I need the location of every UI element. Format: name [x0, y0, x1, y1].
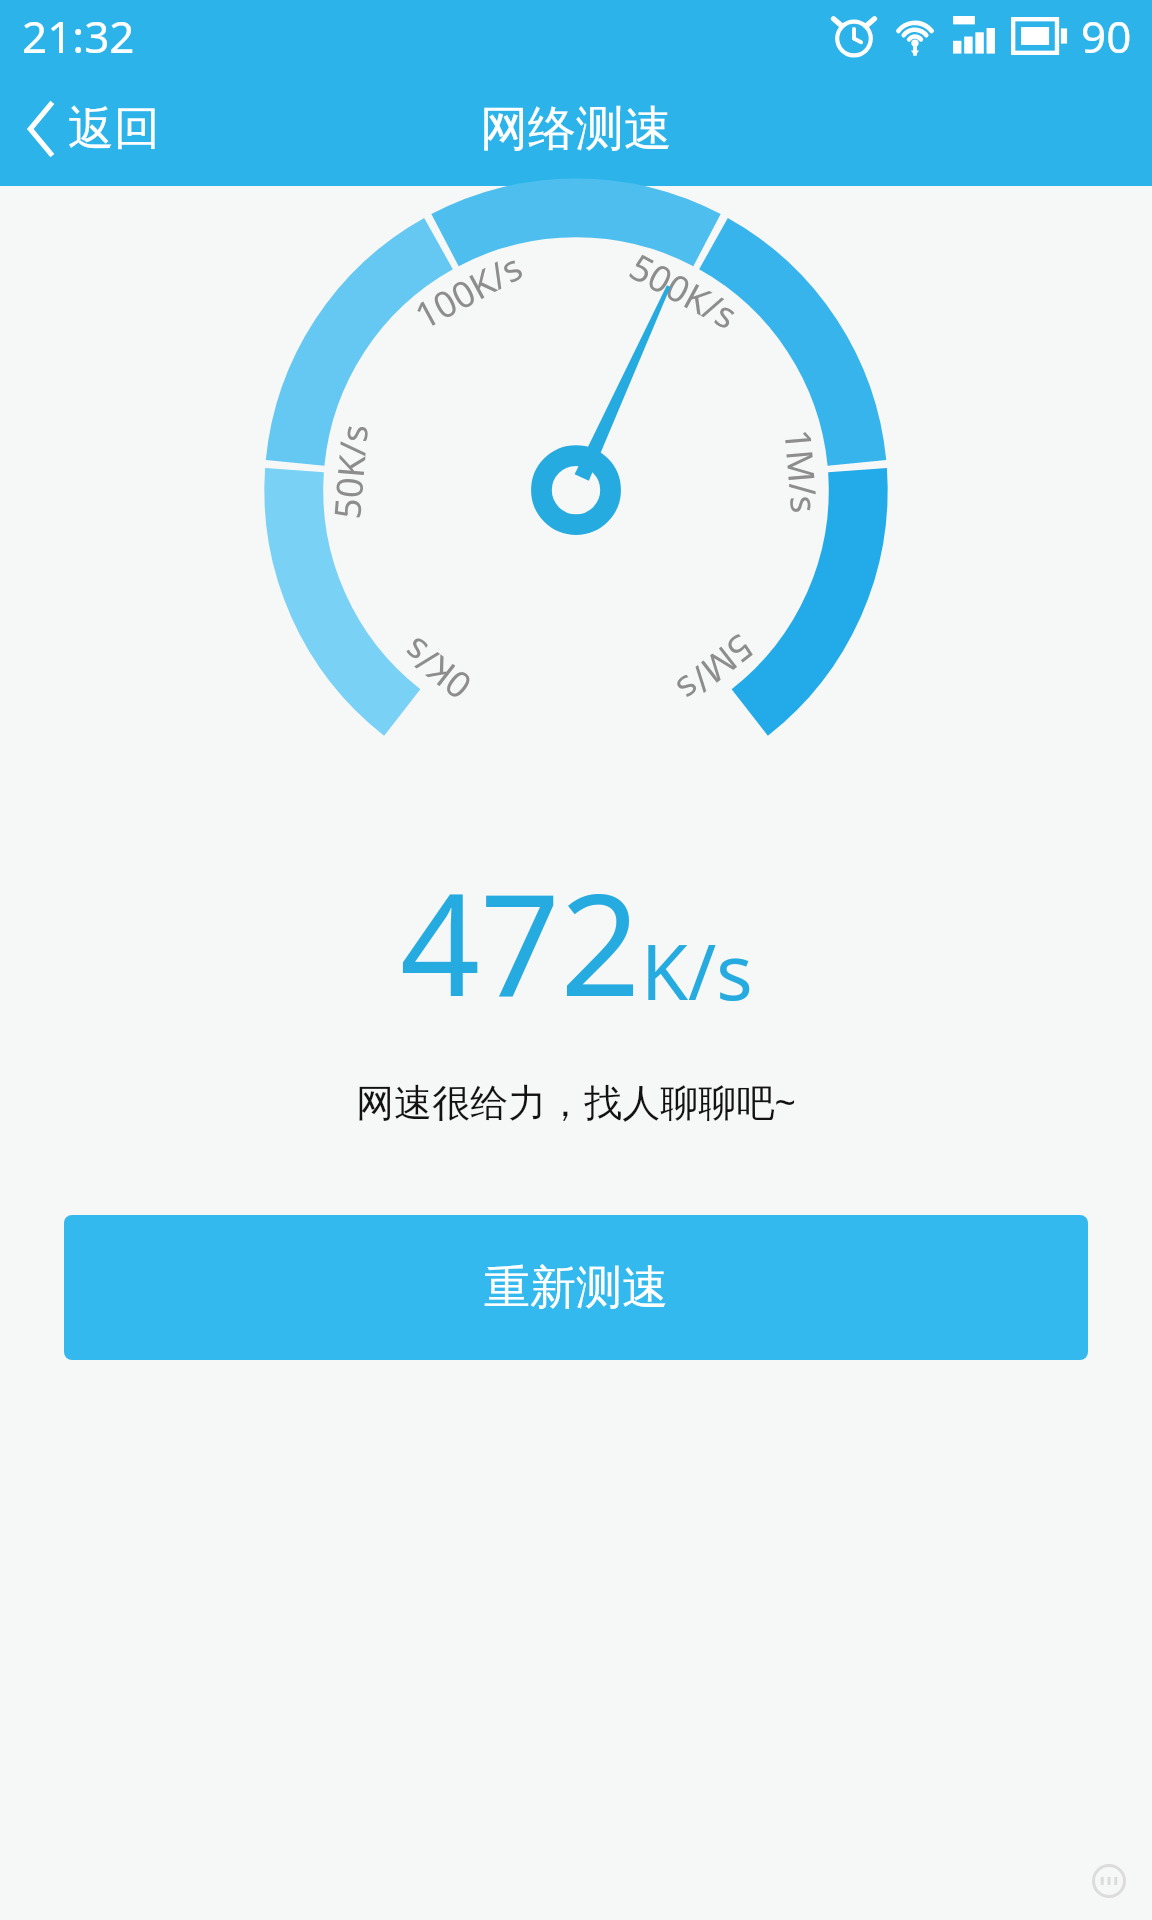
- staticText: 重新测速: [484, 1259, 668, 1317]
- staticText: 21:32: [22, 6, 135, 66]
- staticText: 472: [400, 846, 641, 1037]
- staticText: K/s: [641, 919, 753, 1023]
- staticText: 网速很给力，找人聊聊吧~: [0, 1075, 1152, 1127]
- other: Back: [26, 100, 56, 158]
- button[interactable]: Back: [0, 72, 188, 186]
- staticText: 返回: [68, 100, 160, 158]
- button[interactable]: 重新测速: [64, 1215, 1088, 1360]
- staticText: 网络测速: [480, 99, 672, 159]
- staticText: 90: [1081, 6, 1132, 66]
